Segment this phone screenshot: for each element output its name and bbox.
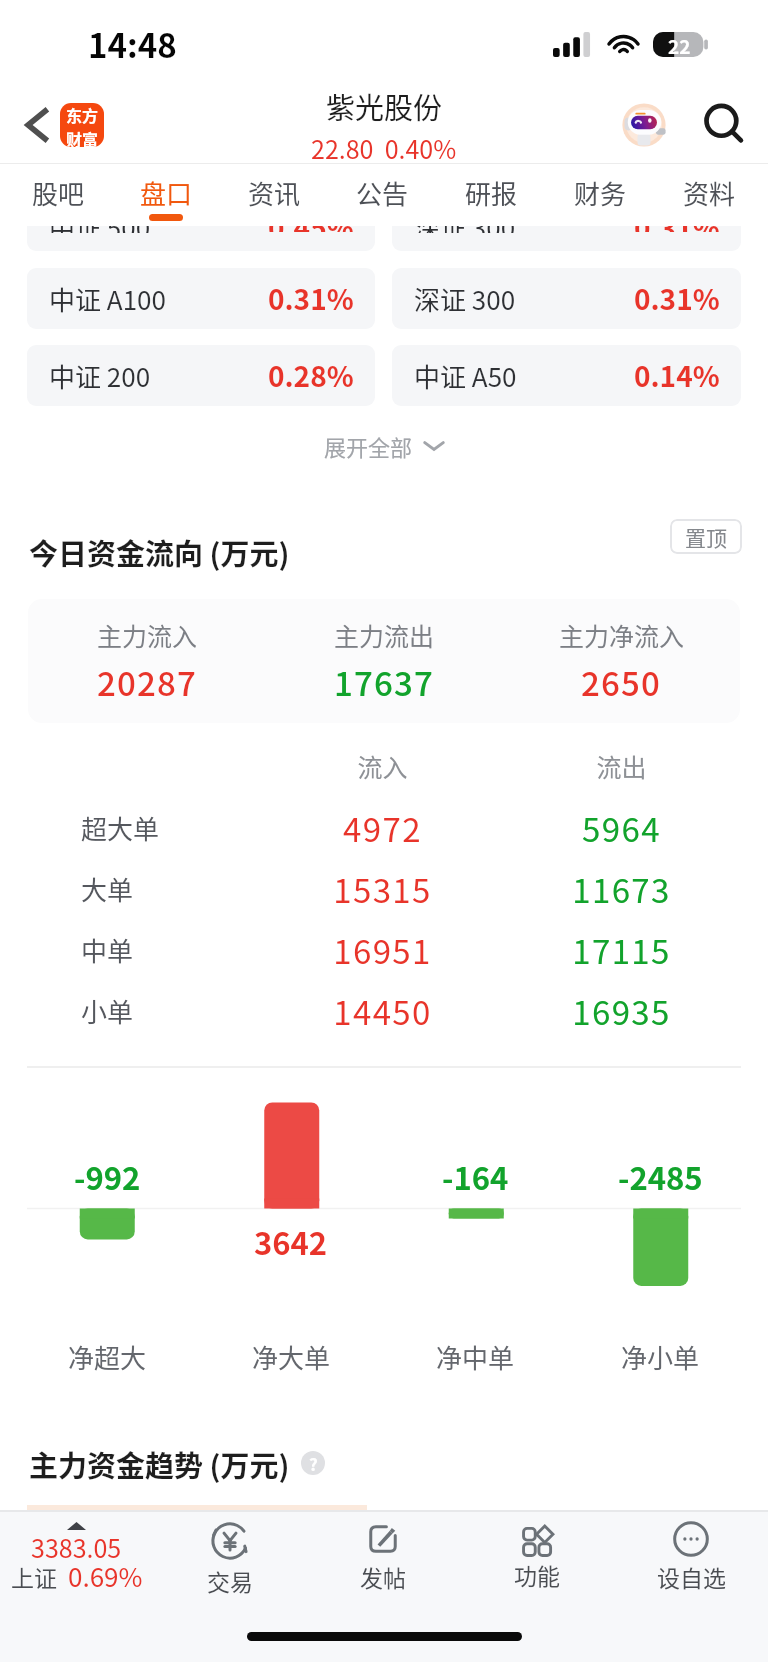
button[interactable]: 设自选 [614, 1512, 768, 1617]
button[interactable]: 中证 A50 [392, 345, 741, 406]
staticText: 22.80 0.40% [311, 130, 457, 163]
staticText: 中证 500 [49, 226, 151, 233]
staticText: 20287 [97, 658, 198, 706]
button[interactable]: 研报 [437, 164, 546, 226]
staticText: 净中单 [436, 1338, 515, 1376]
staticText: 今日资金流向 (万元) [29, 531, 290, 573]
button[interactable]: 中单 [0, 919, 768, 980]
staticText: 资讯 [248, 174, 301, 212]
button[interactable]: 资料 [655, 164, 764, 226]
button[interactable]: East Money home [60, 103, 104, 147]
button[interactable]: 财务 [546, 164, 655, 226]
staticText: 3383.05 [31, 1529, 122, 1565]
button[interactable]: 中证 A100 [27, 268, 375, 329]
staticText: 发帖 [360, 1560, 406, 1593]
staticText: 0.31% [268, 278, 354, 319]
staticText: 东方 [66, 103, 99, 126]
staticText: 股吧 [32, 174, 85, 212]
staticText: 主力流出 [334, 617, 435, 653]
staticText: 主力净流入 [559, 617, 685, 653]
staticText: 流出 [513, 748, 730, 784]
staticText: 功能 [514, 1558, 560, 1591]
staticText: 上证 [11, 1560, 57, 1593]
button[interactable]: AI assistant [616, 97, 672, 153]
staticText: -2485 [618, 1154, 703, 1199]
staticText: 净小单 [621, 1338, 700, 1376]
staticText: 财富 [66, 127, 99, 147]
staticText: 深证 300 [414, 280, 516, 318]
staticText: 0.45% [268, 226, 354, 232]
staticText: 中证 A100 [49, 280, 166, 318]
button[interactable]: 主力流入 [28, 599, 740, 723]
button[interactable]: 大单 [0, 858, 768, 919]
staticText: 置顶 [685, 522, 727, 552]
button[interactable]: 盘口 [112, 164, 220, 226]
button[interactable]: 置顶 [670, 519, 742, 554]
staticText: 16935 [513, 987, 730, 1035]
staticText: 17637 [334, 658, 435, 706]
staticText: 净超大 [68, 1338, 147, 1376]
staticText: 净大单 [252, 1338, 331, 1376]
button[interactable]: 展开全部 [324, 429, 445, 463]
button[interactable]: 深证 300 [392, 226, 741, 251]
staticText: 16951 [252, 926, 513, 974]
button[interactable]: 中证 500 [27, 226, 375, 251]
button[interactable]: 股吧 [4, 164, 112, 226]
staticText: 3642 [254, 1219, 328, 1264]
staticText: -992 [74, 1154, 141, 1199]
staticText: 2650 [581, 658, 662, 706]
button[interactable]: 小单 [0, 980, 768, 1041]
staticText: 主力资金趋势 (万元) [29, 1443, 290, 1483]
button[interactable]: Search [698, 97, 754, 153]
staticText: 中证 200 [49, 357, 151, 395]
staticText: 小单 [81, 992, 134, 1030]
button[interactable]: 功能 [460, 1512, 614, 1617]
staticText: 22 [668, 32, 691, 57]
staticText: 公告 [356, 174, 409, 212]
staticText: 0.31% [634, 226, 720, 232]
staticText: 0.14% [634, 355, 720, 396]
staticText: 资料 [683, 174, 736, 212]
staticText: 研报 [465, 174, 518, 212]
staticText: 流入 [252, 748, 513, 784]
staticText: 主力流入 [97, 617, 198, 653]
staticText: 交易 [207, 1564, 253, 1597]
button[interactable]: 资讯 [220, 164, 328, 226]
staticText: -164 [442, 1154, 509, 1199]
button[interactable]: 中证 200 [27, 345, 375, 406]
button[interactable]: 公告 [328, 164, 437, 226]
staticText: 0.28% [268, 355, 354, 396]
staticText: 展开全部 [324, 430, 413, 462]
staticText: 财务 [574, 174, 627, 212]
staticText: 5964 [513, 804, 730, 852]
staticText: 设自选 [657, 1560, 726, 1593]
staticText: 紫光股份 [326, 85, 443, 127]
staticText: 中证 A50 [414, 357, 517, 395]
staticText: 4972 [252, 804, 513, 852]
button[interactable]: 发帖 [306, 1512, 460, 1617]
staticText: 11673 [513, 865, 730, 913]
staticText: 0.31% [634, 278, 720, 319]
button[interactable]: Help [301, 1451, 325, 1475]
staticText: 15315 [252, 865, 513, 913]
staticText: 中单 [81, 931, 134, 969]
staticText: 盘口 [140, 174, 193, 212]
staticText: 0.69% [68, 1557, 143, 1595]
button[interactable]: 深证 300 [392, 268, 741, 329]
staticText: 14450 [252, 987, 513, 1035]
staticText: 大单 [81, 870, 134, 908]
staticText: 深证 300 [414, 226, 516, 233]
staticText: 14:48 [88, 20, 177, 68]
button[interactable]: 3383.05 [0, 1512, 153, 1617]
staticText: ? [309, 1451, 318, 1475]
button[interactable]: 交易 [153, 1512, 306, 1617]
staticText: 超大单 [81, 809, 160, 847]
button[interactable]: 超大单 [0, 797, 768, 858]
staticText: 17115 [513, 926, 730, 974]
button[interactable]: Back [12, 101, 60, 149]
